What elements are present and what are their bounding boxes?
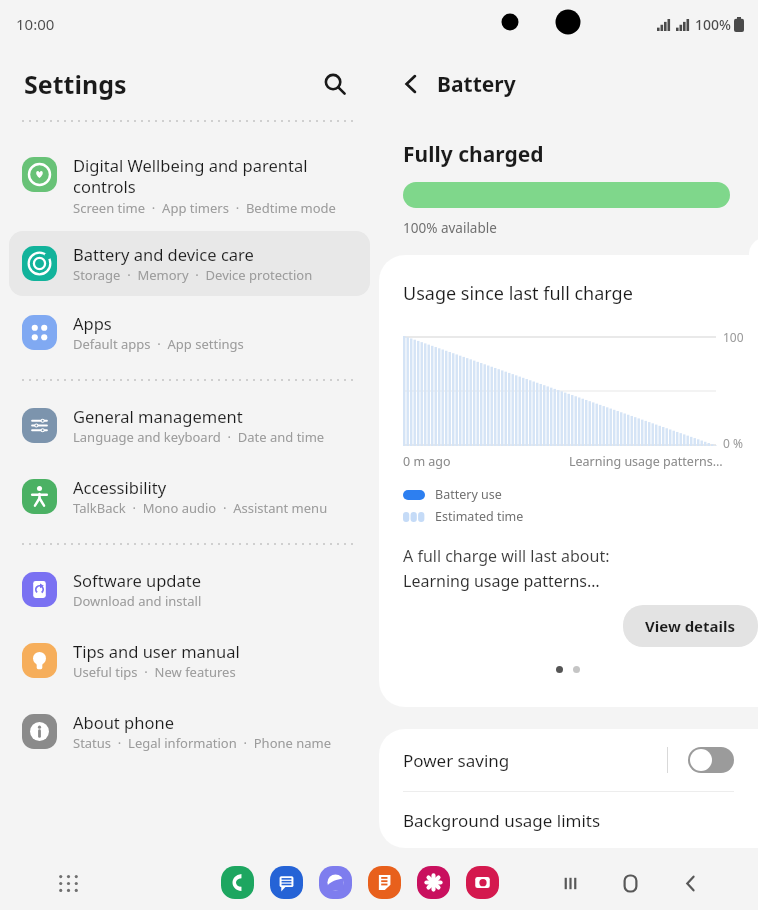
- staticText: Screen time · App timers · Bedtime mode: [73, 199, 336, 217]
- staticText: 100: [723, 329, 744, 345]
- button[interactable]: General management: [9, 393, 370, 458]
- button[interactable]: Tips and user manual: [9, 628, 370, 693]
- button[interactable]: Software update: [9, 557, 370, 622]
- button[interactable]: Recents: [548, 861, 592, 905]
- button[interactable]: Usage since last full charge: [379, 255, 758, 707]
- staticText: Useful tips · New features: [73, 663, 236, 681]
- staticText: Learning usage patterns…: [569, 453, 723, 470]
- staticText: 10:00: [16, 14, 55, 34]
- staticText: Settings: [24, 67, 127, 101]
- staticText: Battery and device care: [73, 243, 254, 265]
- staticText: 0 m ago: [403, 453, 451, 470]
- staticText: Default apps · App settings: [73, 335, 244, 353]
- button[interactable]: Digital Wellbeing and parental controls: [9, 142, 370, 229]
- staticText: 0 %: [723, 435, 743, 451]
- button[interactable]: Accessibility: [9, 464, 370, 529]
- button[interactable]: View details: [623, 605, 758, 647]
- staticText: Status · Legal information · Phone name: [73, 734, 332, 752]
- button[interactable]: Apps: [9, 300, 370, 365]
- button[interactable]: Battery and device care: [9, 231, 370, 296]
- button[interactable]: Back: [668, 861, 712, 905]
- staticText: TalkBack · Mono audio · Assistant menu: [73, 499, 328, 517]
- staticText: Usage since last full charge: [403, 281, 633, 306]
- button[interactable]: Gallery: [417, 866, 450, 899]
- button[interactable]: Power saving: [379, 729, 758, 791]
- staticText: Apps: [73, 312, 112, 334]
- staticText: Digital Wellbeing and parental controls: [73, 154, 308, 198]
- button[interactable]: Back: [389, 62, 433, 106]
- button[interactable]: Camera: [466, 866, 499, 899]
- staticText: Download and install: [73, 592, 202, 610]
- button[interactable]: Power saving toggle: [688, 747, 734, 773]
- button[interactable]: Internet: [319, 866, 352, 899]
- staticText: Battery: [437, 70, 516, 99]
- staticText: A full charge will last about:: [403, 545, 610, 567]
- staticText: Storage · Memory · Device protection: [73, 266, 313, 284]
- button[interactable]: All apps: [48, 863, 88, 903]
- staticText: Language and keyboard · Date and time: [73, 428, 325, 446]
- button[interactable]: About phone: [9, 699, 370, 764]
- staticText: Fully charged: [403, 140, 544, 169]
- button[interactable]: Messages: [270, 866, 303, 899]
- staticText: Software update: [73, 569, 201, 591]
- staticText: Accessibility: [73, 476, 167, 498]
- staticText: Tips and user manual: [73, 640, 240, 662]
- staticText: 100% available: [403, 219, 497, 237]
- staticText: About phone: [73, 711, 174, 733]
- staticText: Background usage limits: [403, 809, 601, 832]
- button[interactable]: Phone: [221, 866, 254, 899]
- button[interactable]: Background usage limits: [379, 792, 758, 848]
- staticText: 100%: [695, 15, 731, 34]
- button[interactable]: Search: [313, 62, 357, 106]
- staticText: Battery use: [435, 486, 502, 503]
- staticText: Estimated time: [435, 508, 524, 525]
- staticText: Learning usage patterns…: [403, 570, 600, 592]
- button[interactable]: Home: [608, 861, 652, 905]
- button[interactable]: Notes: [368, 866, 401, 899]
- staticText: General management: [73, 405, 243, 427]
- staticText: View details: [645, 616, 736, 636]
- staticText: Power saving: [403, 749, 510, 772]
